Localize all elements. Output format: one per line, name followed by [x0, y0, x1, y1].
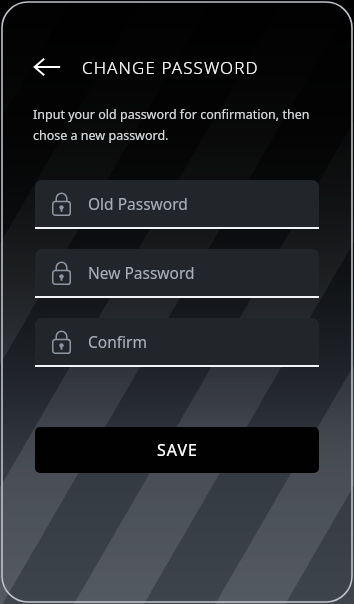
staticText: SAVE — [157, 439, 198, 461]
staticText: CHANGE PASSWORD — [82, 56, 259, 79]
button[interactable]: Confirm — [35, 318, 319, 367]
button[interactable]: New Password — [35, 249, 319, 298]
button[interactable]: Old Password — [35, 180, 319, 229]
staticText: New Password — [88, 262, 195, 283]
staticText: Input your old password for confirmation… — [33, 106, 324, 144]
button[interactable]: SAVE — [35, 427, 319, 473]
staticText: Old Password — [88, 193, 188, 214]
staticText: Confirm — [88, 331, 147, 352]
button[interactable]: Back — [26, 46, 68, 88]
